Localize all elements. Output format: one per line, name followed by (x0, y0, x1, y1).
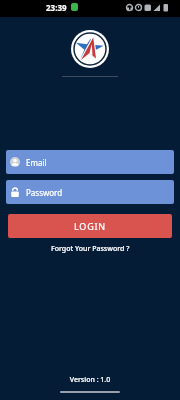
staticText: Email (26, 157, 47, 168)
button[interactable]: LOGIN (8, 214, 172, 238)
button[interactable]: Email (6, 150, 174, 174)
button[interactable]: Password (6, 180, 174, 204)
staticText: Version : 1.0 (0, 375, 180, 385)
staticText: Forgot Your Password ? (51, 244, 130, 254)
button[interactable]: Forgot Your Password ? (0, 243, 180, 255)
staticText: 23:39 (46, 2, 67, 13)
staticText: Password (26, 187, 63, 198)
staticText: LOGIN (74, 220, 107, 232)
